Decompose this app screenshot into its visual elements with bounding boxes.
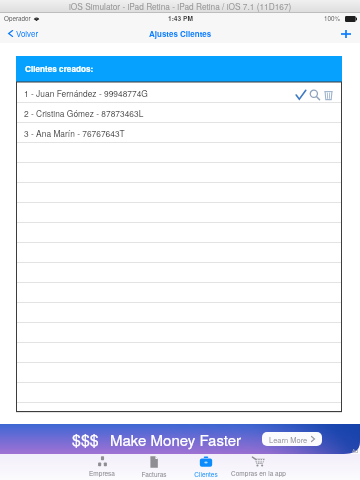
staticText: 1 - Juan Fernández - 99948774G — [24, 87, 148, 99]
button[interactable] — [16, 263, 342, 283]
button[interactable]: 1 - Juan Fernández - 99948774G — [16, 83, 342, 103]
button[interactable]: Delete — [321, 86, 335, 104]
staticText: Ad — [352, 447, 359, 454]
button[interactable] — [16, 143, 342, 163]
button[interactable]: 2 - Cristina Gómez - 87873463L — [16, 103, 342, 123]
staticText: 3 - Ana Marín - 76767643T — [24, 127, 125, 139]
button[interactable] — [16, 363, 342, 383]
button[interactable]: 3 - Ana Marín - 76767643T — [16, 123, 342, 143]
staticText: 2 - Cristina Gómez - 87873463L — [24, 107, 144, 119]
staticText: Operador — [4, 14, 31, 23]
button[interactable] — [16, 243, 342, 263]
button[interactable]: Search — [307, 86, 321, 104]
button[interactable]: Edit — [294, 86, 307, 104]
button[interactable] — [16, 183, 342, 203]
button[interactable] — [16, 283, 342, 303]
staticText: $$$ — [72, 428, 99, 451]
button[interactable]: Facturas — [128, 454, 180, 480]
button[interactable] — [16, 203, 342, 223]
staticText: Facturas — [141, 470, 167, 479]
staticText: Make Money Faster — [110, 429, 242, 450]
staticText: 1:43 PM — [168, 14, 193, 23]
staticText: Volver — [16, 28, 39, 39]
staticText: Clientes — [194, 470, 218, 479]
staticText: Empresa — [89, 469, 115, 478]
staticText: 100% — [324, 14, 341, 23]
button[interactable]: Volver — [0, 25, 47, 42]
button[interactable] — [16, 303, 342, 323]
button[interactable]: Clientes — [180, 454, 232, 480]
button[interactable]: Compras en la app — [232, 454, 284, 480]
button[interactable]: Add — [332, 24, 360, 43]
button[interactable] — [16, 163, 342, 183]
button[interactable] — [16, 383, 342, 403]
staticText: iOS Simulator - iPad Retina - iPad Retin… — [69, 0, 292, 12]
staticText: Compras en la app — [231, 469, 286, 478]
staticText: Ajustes Clientes — [149, 28, 212, 39]
button[interactable]: Empresa — [76, 454, 128, 480]
button[interactable]: Learn More — [262, 432, 322, 446]
button[interactable] — [16, 343, 342, 363]
button[interactable] — [16, 223, 342, 243]
staticText: Learn More — [269, 434, 308, 445]
button[interactable] — [16, 323, 342, 343]
staticText: Clientes creados: — [25, 63, 94, 75]
button[interactable] — [16, 403, 342, 413]
